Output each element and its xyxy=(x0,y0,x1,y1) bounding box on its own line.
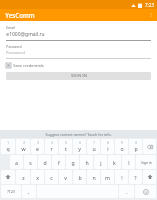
staticText: s xyxy=(29,159,32,166)
staticText: 7 xyxy=(93,141,95,145)
staticText: Save credentials xyxy=(13,63,44,68)
staticText: p xyxy=(134,145,138,152)
button[interactable]: c xyxy=(45,170,58,184)
button[interactable]: d xyxy=(38,155,51,169)
button[interactable]: 3 xyxy=(31,139,44,154)
staticText: i xyxy=(107,145,109,152)
button[interactable]: l xyxy=(122,155,135,169)
staticText: l xyxy=(128,159,130,166)
staticText: k xyxy=(113,159,116,166)
button[interactable]: SIGN IN xyxy=(6,72,151,80)
button[interactable]: 0 xyxy=(129,139,142,154)
staticText: z xyxy=(22,174,25,181)
staticText: c xyxy=(50,174,53,181)
staticText: x xyxy=(36,174,39,181)
button[interactable]: Save credentials xyxy=(6,62,44,69)
button[interactable]: e1000@gmail.ru xyxy=(6,31,151,41)
staticText: j xyxy=(100,159,102,166)
staticText: e xyxy=(36,145,39,152)
staticText: Sign in xyxy=(141,160,152,165)
button[interactable]: Backspace xyxy=(143,139,156,154)
staticText: 6 xyxy=(79,141,81,145)
staticText: o xyxy=(120,145,124,152)
button[interactable]: g xyxy=(66,155,79,169)
button[interactable]: b xyxy=(73,170,86,184)
button[interactable]: , xyxy=(22,185,36,198)
button[interactable]: m xyxy=(101,170,114,184)
button[interactable]: 7 xyxy=(87,139,100,154)
button[interactable]: Shift right xyxy=(143,170,156,184)
button[interactable]: YesComm xyxy=(5,11,35,19)
button[interactable]: ?123 xyxy=(1,185,21,198)
staticText: a xyxy=(15,159,18,166)
staticText: Email xyxy=(6,25,15,30)
button[interactable]: More options xyxy=(145,9,157,21)
staticText: SIGN IN xyxy=(71,73,87,79)
button[interactable]: f xyxy=(52,155,65,169)
staticText: f xyxy=(58,159,60,166)
staticText: q xyxy=(6,145,10,152)
staticText: 1 xyxy=(7,141,9,145)
staticText: Password xyxy=(6,50,25,56)
staticText: u xyxy=(92,145,96,152)
button[interactable]: 5 xyxy=(59,139,72,154)
staticText: h xyxy=(85,159,89,166)
button[interactable]: 1 xyxy=(1,139,15,154)
staticText: 4 xyxy=(51,141,53,145)
button[interactable]: x xyxy=(31,170,44,184)
staticText: ? xyxy=(134,174,137,181)
staticText: 8 xyxy=(107,141,109,145)
button[interactable]: Sign in xyxy=(136,155,156,169)
button[interactable]: Password xyxy=(6,50,151,59)
staticText: , xyxy=(28,188,30,195)
button[interactable]: s xyxy=(24,155,37,169)
staticText: 3 xyxy=(37,141,39,145)
button[interactable]: Shift xyxy=(1,170,15,184)
button[interactable]: ! xyxy=(115,170,128,184)
button[interactable]: v xyxy=(59,170,72,184)
staticText: b xyxy=(78,174,82,181)
staticText: ?123 xyxy=(7,189,15,194)
staticText: v xyxy=(64,174,67,181)
staticText: YesComm xyxy=(5,11,35,19)
button[interactable]: a xyxy=(10,155,23,169)
staticText: w xyxy=(21,145,26,152)
staticText: n xyxy=(92,174,96,181)
button[interactable]: 4 xyxy=(45,139,58,154)
button[interactable]: Suggest contact names? Touch for info. xyxy=(0,130,157,138)
staticText: g xyxy=(71,159,75,166)
button[interactable]: k xyxy=(108,155,121,169)
staticText: y xyxy=(78,145,81,152)
staticText: . xyxy=(126,188,128,195)
button[interactable]: Emoji xyxy=(135,185,156,198)
button[interactable]: 6 xyxy=(73,139,86,154)
staticText: 0 xyxy=(135,141,137,145)
button[interactable]: 9 xyxy=(115,139,128,154)
staticText: e1000@gmail.ru xyxy=(6,31,45,38)
staticText: ! xyxy=(121,174,123,181)
button[interactable]: 2 xyxy=(16,139,30,154)
button[interactable]: ? xyxy=(129,170,142,184)
button[interactable]: z xyxy=(16,170,30,184)
staticText: r xyxy=(50,145,53,152)
button[interactable]: 8 xyxy=(101,139,114,154)
staticText: 7:23 xyxy=(145,2,154,8)
staticText: 2 xyxy=(23,141,25,145)
staticText: Password xyxy=(6,44,22,49)
staticText: m xyxy=(105,174,110,181)
staticText: t xyxy=(65,145,67,152)
button[interactable]: h xyxy=(80,155,93,169)
staticText: 9 xyxy=(121,141,123,145)
staticText: 5 xyxy=(65,141,67,145)
staticText: d xyxy=(43,159,47,166)
button[interactable]: j xyxy=(94,155,107,169)
button[interactable]: n xyxy=(87,170,100,184)
staticText: Suggest contact names? Touch for info. xyxy=(45,132,112,137)
